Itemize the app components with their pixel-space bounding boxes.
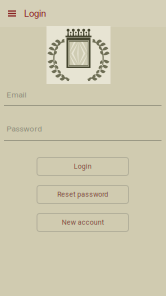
button[interactable]: Reset password bbox=[37, 185, 128, 203]
staticText: Password bbox=[6, 124, 42, 133]
staticText: New account bbox=[62, 218, 104, 226]
button[interactable]: New account bbox=[37, 213, 128, 231]
staticText: Reset password bbox=[57, 190, 108, 198]
staticText: Login bbox=[74, 162, 92, 170]
staticText: Login bbox=[24, 8, 46, 19]
button[interactable]: Menu bbox=[0, 0, 24, 27]
button[interactable]: Login bbox=[37, 157, 128, 175]
staticText: Email bbox=[6, 90, 26, 99]
